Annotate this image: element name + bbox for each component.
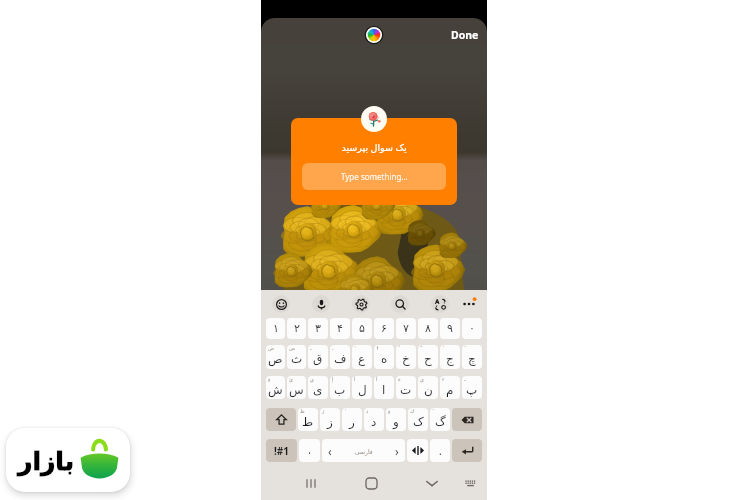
- button[interactable]: ص: [287, 345, 306, 369]
- staticText: ۸: [425, 322, 431, 335]
- button[interactable]: یک سوال بپرسید: [291, 118, 457, 205]
- button[interactable]: Switch keyboard: [460, 473, 480, 493]
- button[interactable]: آ: [374, 376, 394, 399]
- button[interactable]: ‹: [322, 439, 405, 462]
- staticText: ذ: [366, 408, 369, 414]
- button[interactable]: More options: [460, 295, 478, 313]
- button[interactable]: Settings: [352, 295, 370, 313]
- staticText: !#1: [274, 444, 289, 458]
- button[interactable]: !#1: [266, 439, 297, 462]
- button[interactable]: Bazaar: [6, 428, 130, 492]
- button[interactable]: Home: [361, 473, 381, 493]
- staticText: ن: [424, 383, 433, 397]
- staticText: ز: [327, 415, 333, 429]
- button[interactable]: ۷: [396, 318, 416, 339]
- button[interactable]: ژ: [320, 408, 340, 431]
- staticText: ش: [268, 383, 283, 397]
- staticText: ‹: [328, 443, 332, 459]
- button[interactable]: ّ: [418, 345, 438, 369]
- button[interactable]: ۸: [418, 318, 438, 339]
- button[interactable]: ،: [299, 439, 320, 462]
- staticText: م: [446, 383, 454, 397]
- button[interactable]: ٓ: [430, 408, 450, 431]
- staticText: ك: [410, 408, 415, 414]
- button[interactable]: .: [430, 439, 450, 462]
- staticText: فارسی: [355, 448, 373, 455]
- staticText: ۰: [469, 322, 475, 335]
- staticText: إ: [332, 376, 334, 382]
- staticText: ة: [398, 376, 401, 382]
- button[interactable]: ٓ: [462, 345, 482, 369]
- staticText: ۷: [403, 322, 409, 335]
- staticText: ٱ: [376, 345, 379, 351]
- button[interactable]: Emoji: [272, 295, 290, 313]
- button[interactable]: ٔ: [352, 345, 372, 369]
- button[interactable]: Done: [451, 28, 479, 42]
- button[interactable]: ة: [396, 376, 416, 399]
- button[interactable]: ٰ: [342, 408, 362, 431]
- staticText: ه: [381, 352, 388, 366]
- staticText: ۳: [315, 322, 321, 335]
- staticText: ۶: [381, 322, 387, 335]
- button[interactable]: Recents: [301, 473, 321, 493]
- button[interactable]: ْ: [396, 345, 416, 369]
- staticText: ›: [395, 443, 399, 459]
- button[interactable]: ۶: [374, 318, 394, 339]
- staticText: ۵: [359, 322, 365, 335]
- button[interactable]: ۴: [330, 318, 350, 339]
- staticText: ى: [420, 376, 424, 382]
- button[interactable]: Color picker: [365, 26, 383, 44]
- button[interactable]: ظ: [298, 408, 318, 431]
- button[interactable]: ۳: [308, 318, 328, 339]
- button[interactable]: Translate: [431, 295, 449, 313]
- staticText: ح: [424, 352, 432, 366]
- staticText: ۴: [337, 322, 343, 335]
- staticText: ؤ: [268, 376, 271, 382]
- button[interactable]: ۰: [462, 318, 482, 339]
- button[interactable]: ـ: [462, 376, 482, 399]
- button[interactable]: Hide keyboard: [422, 473, 442, 493]
- button[interactable]: ى: [418, 376, 438, 399]
- button[interactable]: Shift: [266, 408, 296, 431]
- staticText: یک سوال بپرسید: [302, 141, 446, 154]
- staticText: .: [439, 444, 442, 458]
- button[interactable]: ۱: [266, 318, 285, 339]
- button[interactable]: أ: [352, 376, 372, 399]
- button[interactable]: ء: [440, 376, 460, 399]
- button[interactable]: ـ: [308, 345, 328, 369]
- staticText: ی: [313, 383, 323, 397]
- staticText: ر: [349, 415, 355, 429]
- button[interactable]: ك: [408, 408, 428, 431]
- button[interactable]: ؤ: [266, 376, 285, 399]
- staticText: ک: [413, 415, 424, 429]
- staticText: ل: [358, 383, 367, 397]
- button[interactable]: ؤ: [386, 408, 406, 431]
- button[interactable]: ۹: [440, 318, 460, 339]
- button[interactable]: Backspace: [452, 408, 482, 431]
- staticText: خ: [402, 352, 410, 366]
- staticText: ف: [334, 352, 347, 366]
- button[interactable]: ،: [330, 345, 350, 369]
- button[interactable]: Search: [391, 295, 409, 313]
- staticText: ا: [382, 383, 386, 397]
- button[interactable]: ي: [308, 376, 328, 399]
- button[interactable]: ض: [266, 345, 285, 369]
- staticText: ئ: [289, 376, 293, 382]
- button[interactable]: Profile picture: [361, 106, 387, 132]
- button[interactable]: Voice input: [312, 295, 330, 313]
- staticText: ،: [308, 446, 311, 456]
- button[interactable]: ۲: [287, 318, 306, 339]
- button[interactable]: ٰ: [440, 345, 460, 369]
- button[interactable]: ۵: [352, 318, 372, 339]
- staticText: ب: [334, 383, 346, 397]
- staticText: بازار: [18, 447, 75, 476]
- button[interactable]: ذ: [364, 408, 384, 431]
- button[interactable]: ٱ: [374, 345, 394, 369]
- button[interactable]: Cursor control: [407, 439, 428, 462]
- staticText: Done: [451, 28, 479, 42]
- button[interactable]: إ: [330, 376, 350, 399]
- button[interactable]: ئ: [287, 376, 306, 399]
- staticText: ؤ: [388, 408, 391, 414]
- staticText: پ: [466, 383, 478, 397]
- button[interactable]: Enter: [452, 439, 482, 462]
